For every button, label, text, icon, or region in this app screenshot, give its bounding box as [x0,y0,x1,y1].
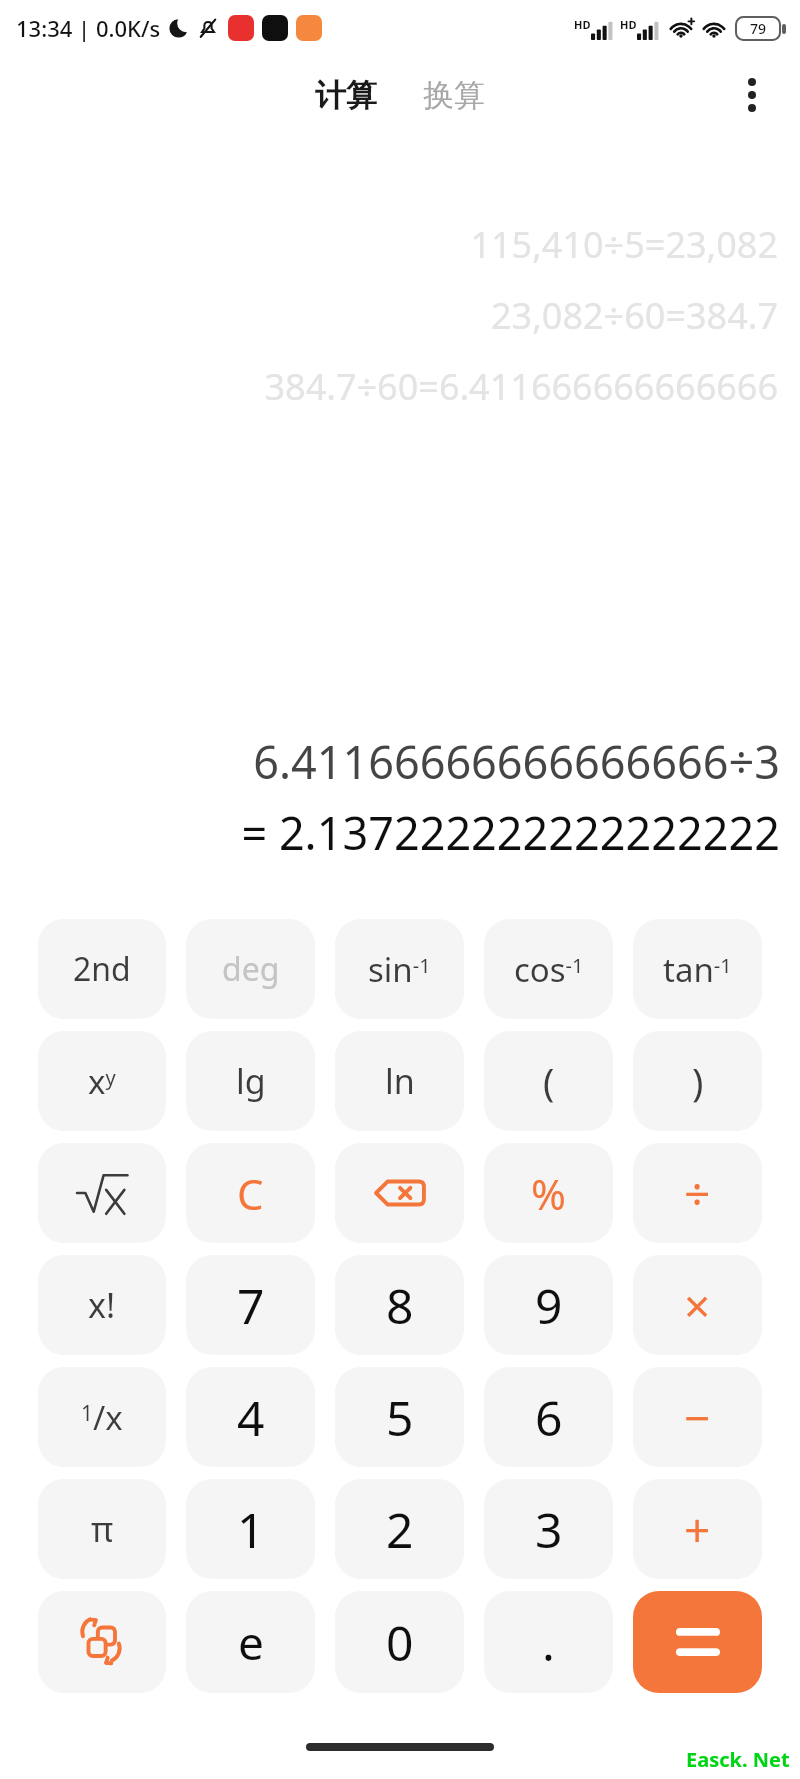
staticText: ln [385,1058,415,1104]
button[interactable]: Square root [38,1143,166,1243]
button[interactable]: lg [186,1031,315,1131]
staticText: % [531,1165,566,1222]
button[interactable]: 3 [484,1479,613,1579]
button[interactable]: ( [484,1031,613,1131]
staticText: tan-1 [663,947,732,992]
staticText: deg [222,947,280,991]
staticText: Easck. Net [686,1746,790,1773]
button[interactable]: x! [38,1255,166,1355]
staticText: sin-1 [368,947,431,992]
staticText: 换算 [423,76,485,115]
button[interactable]: deg [186,919,315,1019]
button[interactable]: × [633,1255,762,1355]
button[interactable]: + [633,1479,762,1579]
staticText: 1/x [81,1395,123,1440]
button[interactable]: 7 [186,1255,315,1355]
button[interactable]: 4 [186,1367,315,1467]
button[interactable]: . [484,1591,613,1693]
button[interactable]: 换算 [411,68,497,123]
button[interactable]: 0 [335,1591,464,1693]
button[interactable]: Backspace [335,1143,464,1243]
staticText: ÷ [684,1162,711,1225]
button[interactable]: e [186,1591,315,1693]
staticText: x! [88,1282,116,1328]
staticText: = 2.137222222222222222 [241,802,780,863]
staticText: π [91,1506,114,1552]
button[interactable]: ) [633,1031,762,1131]
button[interactable]: 1 [186,1479,315,1579]
button[interactable]: 计算 [303,68,389,123]
button[interactable]: 9 [484,1255,613,1355]
staticText: 4 [237,1385,265,1450]
staticText: xy [88,1059,116,1104]
staticText: × [684,1274,711,1337]
button[interactable]: More options [728,71,776,119]
staticText: 计算 [315,76,377,115]
button[interactable]: 5 [335,1367,464,1467]
staticText: + [684,1498,711,1561]
staticText: 6 [535,1385,563,1450]
button[interactable]: − [633,1367,762,1467]
staticText: 6.41166666666666666÷3 [253,731,780,792]
button[interactable]: C [186,1143,315,1243]
staticText: 79 [750,19,767,38]
staticText: lg [236,1058,266,1104]
button[interactable]: 8 [335,1255,464,1355]
staticText: cos-1 [514,947,584,992]
button[interactable]: 2 [335,1479,464,1579]
staticText: . [542,1610,555,1675]
button[interactable]: 1/x [38,1367,166,1467]
staticText: 384.7÷60=6.411666666666666 [264,362,778,411]
button[interactable]: ÷ [633,1143,762,1243]
staticText: 7 [237,1273,265,1338]
staticText: ( [543,1055,555,1107]
button[interactable]: Equals [633,1591,762,1693]
staticText: 9 [535,1273,563,1338]
button[interactable]: xy [38,1031,166,1131]
staticText: HD [574,17,591,32]
staticText: 5 [386,1385,414,1450]
button[interactable]: 2nd [38,919,166,1019]
staticText: ) [692,1055,704,1107]
button[interactable]: % [484,1143,613,1243]
button[interactable]: ln [335,1031,464,1131]
staticText: e [238,1611,264,1674]
staticText: − [684,1386,711,1449]
staticText: 8 [386,1273,414,1338]
button[interactable]: 6 [484,1367,613,1467]
button[interactable]: Unit conversion [38,1591,166,1693]
staticText: 2nd [73,947,131,991]
staticText: 3 [535,1497,563,1562]
staticText: HD [620,17,637,32]
staticText: 1 [237,1497,265,1562]
staticText: C [237,1165,264,1222]
staticText: 23,082÷60=384.7 [491,291,778,340]
button[interactable]: cos-1 [484,919,613,1019]
staticText: 0 [386,1610,414,1675]
button[interactable]: tan-1 [633,919,762,1019]
staticText: 2 [386,1497,414,1562]
staticText: 115,410÷5=23,082 [470,220,778,269]
button[interactable]: sin-1 [335,919,464,1019]
button[interactable]: π [38,1479,166,1579]
staticText: 13:34 | 0.0K/s [16,13,161,43]
